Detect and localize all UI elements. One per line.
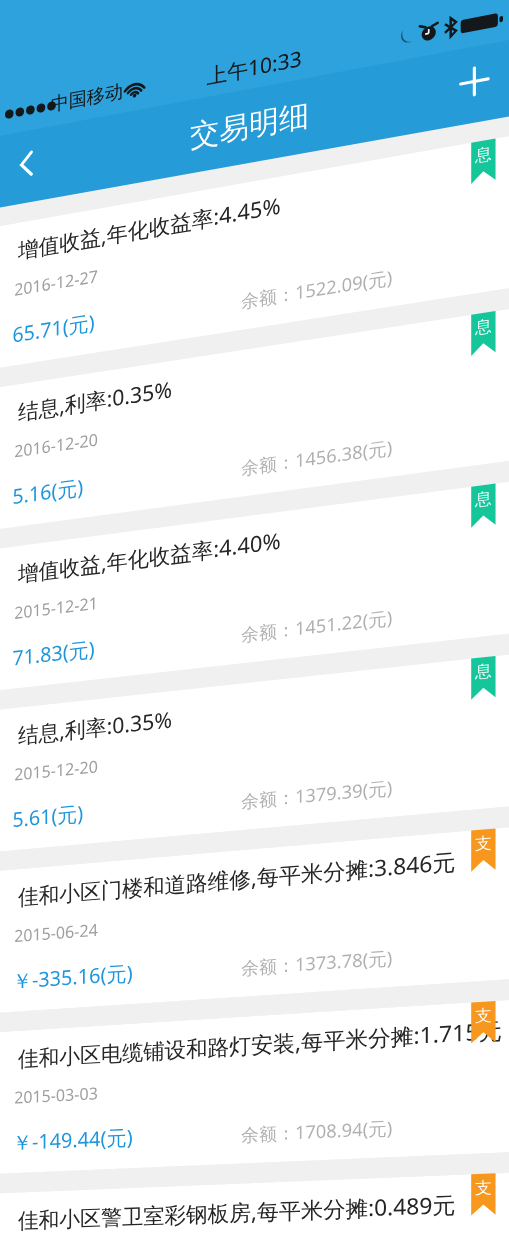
button[interactable]: Back bbox=[9, 142, 44, 186]
button[interactable]: 结息,利率:0.35% bbox=[0, 643, 509, 858]
button[interactable]: 增值收益,年化收益率:4.40% bbox=[0, 468, 509, 698]
staticText: 佳和小区警卫室彩钢板房,每平米分摊:0.489元 bbox=[18, 1188, 456, 1234]
staticText: 息 bbox=[471, 315, 495, 339]
button[interactable]: 增值收益,年化收益率:4.45% bbox=[0, 118, 509, 379]
staticText: 5.61(元) bbox=[12, 799, 84, 834]
staticText: 71.83(元) bbox=[12, 635, 95, 672]
staticText: 结息,利率:0.35% bbox=[18, 373, 172, 426]
staticText: ￥-149.44(元) bbox=[12, 1123, 134, 1157]
staticText: 余额：1451.22(元) bbox=[241, 605, 393, 647]
button[interactable]: 佳和小区电缆铺设和路灯安装,每平米分摊:1.715元 bbox=[0, 993, 509, 1177]
staticText: 支 bbox=[471, 1005, 495, 1027]
staticText: 余额：1373.78(元) bbox=[241, 945, 393, 981]
button[interactable]: 佳和小区门楼和道路维修,每平米分摊:3.846元 bbox=[0, 818, 509, 1017]
staticText: ￥-335.16(元) bbox=[12, 959, 134, 995]
staticText: 息 bbox=[471, 143, 495, 167]
staticText: 余额：1522.09(元) bbox=[241, 265, 393, 314]
staticText: 增值收益,年化收益率:4.40% bbox=[18, 525, 281, 588]
staticText: 2015-12-21 bbox=[14, 591, 98, 624]
staticText: 余额：1456.38(元) bbox=[241, 435, 393, 481]
button[interactable]: 结息,利率:0.35% bbox=[0, 293, 509, 539]
staticText: 65.71(元) bbox=[12, 308, 95, 349]
button[interactable]: 佳和小区警卫室彩钢板房,每平米分摊:0.489元 bbox=[0, 1169, 509, 1244]
staticText: 佳和小区电缆铺设和路灯安装,每平米分摊:1.715元 bbox=[18, 1014, 503, 1072]
staticText: 结息,利率:0.35% bbox=[18, 704, 172, 749]
staticText: 2015-06-24 bbox=[14, 918, 98, 947]
staticText: 2016-12-27 bbox=[14, 264, 98, 301]
staticText: 支 bbox=[471, 832, 495, 855]
staticText: 交易明细 bbox=[190, 96, 309, 156]
staticText: 2016-12-20 bbox=[14, 428, 98, 462]
staticText: 上午10:33 bbox=[206, 44, 302, 91]
staticText: 2015-12-20 bbox=[14, 755, 98, 785]
button[interactable]: Add bbox=[455, 59, 493, 103]
staticText: 增值收益,年化收益率:4.45% bbox=[18, 189, 281, 264]
staticText: 2015-03-03 bbox=[14, 1082, 98, 1108]
staticText: 5.16(元) bbox=[12, 473, 84, 511]
staticText: 中国移动 bbox=[51, 79, 123, 117]
staticText: 支 bbox=[471, 1177, 495, 1199]
staticText: 息 bbox=[471, 488, 495, 511]
staticText: 余额：1708.94(元) bbox=[241, 1115, 393, 1148]
staticText: 余额：1379.39(元) bbox=[241, 775, 393, 814]
staticText: 佳和小区门楼和道路维修,每平米分摊:3.846元 bbox=[18, 845, 456, 911]
staticText: 息 bbox=[471, 660, 495, 683]
